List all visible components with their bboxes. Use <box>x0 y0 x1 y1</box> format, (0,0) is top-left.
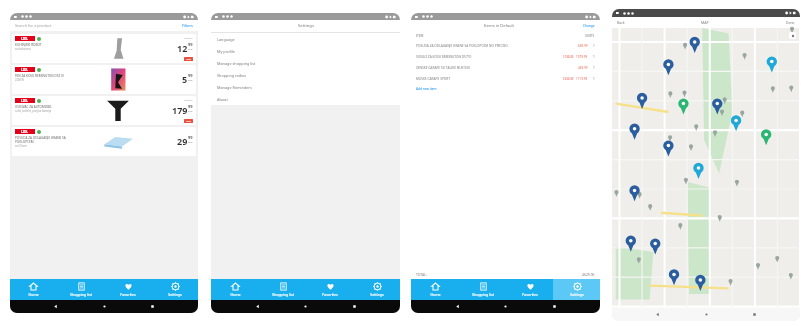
staticText: set 3 kom <box>15 144 27 148</box>
staticText: LIDL <box>21 99 29 103</box>
button[interactable]: Shopping list <box>459 279 506 300</box>
staticText: Shopping radius <box>217 73 247 78</box>
staticText: 99 <box>188 73 193 78</box>
staticText: Home <box>230 292 241 297</box>
button[interactable]: LIDL <box>12 65 196 94</box>
button[interactable]: LIDL <box>12 34 196 63</box>
button[interactable]: Recents <box>552 304 557 309</box>
button[interactable]: Recents <box>352 304 357 309</box>
button[interactable]: Home <box>503 304 508 309</box>
staticText: 179 <box>172 104 188 116</box>
staticText: sa dodacima <box>15 47 31 51</box>
staticText: LIDL <box>21 68 29 72</box>
staticText: RSD <box>188 140 193 143</box>
button[interactable]: Language <box>211 33 400 45</box>
staticText: Settings <box>168 292 182 297</box>
button[interactable]: Map layers <box>789 32 796 39</box>
staticText: Shopping list <box>70 292 92 297</box>
button[interactable]: Back <box>655 312 660 317</box>
staticText: POSUDA ZA ODLAGANJE HRANE SA POKLOPCEM N… <box>416 44 578 48</box>
staticText: ručni, bežični, punjiva baterija <box>15 109 52 113</box>
staticText: ZENSKE CARAPE SU TALIKE NUR 500 <box>416 66 578 70</box>
button[interactable]: Shopping list <box>259 279 306 300</box>
button[interactable]: Search for a product <box>15 20 193 31</box>
staticText: 1 <box>593 66 595 70</box>
button[interactable]: Back <box>617 20 625 25</box>
staticText: 649.99 <box>578 44 588 48</box>
button[interactable]: POSUDA ZA ODLAGANJE HRANE SA POKLOPCEM N… <box>411 40 600 51</box>
button[interactable]: Manage Reminders <box>211 81 400 93</box>
staticText: -20% <box>186 120 192 123</box>
staticText: TOTAL: <box>416 272 427 277</box>
button[interactable]: Home <box>102 304 107 309</box>
button[interactable]: ZENSKE CARAPE SU TALIKE NUR 500 <box>411 62 600 73</box>
button[interactable]: Favorites <box>506 279 553 300</box>
button[interactable]: Shopping radius <box>211 69 400 81</box>
staticText: umesto <box>184 36 193 39</box>
button[interactable]: Manage shopping list <box>211 57 400 69</box>
button[interactable]: My profile <box>211 45 400 57</box>
staticText: FEN ZA KOSU REMINGTON D5210 <box>15 74 64 78</box>
button[interactable]: Home <box>303 304 308 309</box>
button[interactable]: Change <box>583 24 595 28</box>
staticText: Shopping list <box>272 292 294 297</box>
staticText: RSD <box>188 78 193 81</box>
staticText: Favorites <box>322 292 338 297</box>
staticText: Shopping list <box>472 292 494 297</box>
button[interactable]: Back <box>455 304 460 309</box>
staticText: Language <box>217 37 235 42</box>
button[interactable]: Settings <box>353 279 400 300</box>
staticText: 1119.99 <box>576 77 588 81</box>
staticText: MUSKE CARAPE SPORT <box>416 77 563 81</box>
staticText: Settings <box>570 292 584 297</box>
staticText: Back <box>617 20 625 25</box>
staticText: 469.99 <box>578 66 588 70</box>
button[interactable]: LIDL <box>12 96 196 125</box>
staticText: 4629.96 <box>582 272 595 277</box>
staticText: 1 <box>593 44 595 48</box>
button[interactable]: About <box>211 93 400 105</box>
button[interactable]: Settings <box>151 279 198 300</box>
staticText: -20% <box>186 58 192 61</box>
staticText: Search for a product <box>15 23 52 28</box>
button[interactable]: Home <box>704 312 709 317</box>
button[interactable]: Add new item <box>411 84 600 94</box>
button[interactable]: Recents <box>150 304 155 309</box>
staticText: Change <box>583 24 595 28</box>
button[interactable]: Recents <box>752 312 757 317</box>
staticText: Home <box>28 292 39 297</box>
button[interactable]: Settings <box>553 279 600 300</box>
staticText: ITEM <box>416 34 424 38</box>
button[interactable]: Done <box>786 20 795 25</box>
button[interactable]: Home <box>211 279 259 300</box>
staticText: Add new item <box>416 87 437 91</box>
button[interactable]: SUSILO ZA KOSU REMINGTON D5710 <box>411 51 600 62</box>
staticText: 1399.99 <box>563 77 574 81</box>
button[interactable]: Back <box>255 304 260 309</box>
button[interactable]: Home <box>10 279 57 300</box>
staticText: 99 <box>188 135 193 140</box>
button[interactable]: Favorites <box>306 279 353 300</box>
staticText: 1 <box>593 55 595 59</box>
staticText: Favorites <box>120 292 136 297</box>
staticText: 1079.99 <box>576 55 588 59</box>
button[interactable]: Favorites <box>104 279 151 300</box>
staticText: LIDL <box>21 130 29 134</box>
staticText: MAP <box>701 20 709 25</box>
button[interactable]: Home <box>411 279 459 300</box>
staticText: 5 <box>182 73 188 85</box>
staticText: 99 <box>188 42 193 47</box>
staticText: About <box>217 97 228 102</box>
staticText: Home <box>430 292 441 297</box>
staticText: Settings <box>370 292 384 297</box>
staticText: 1 <box>593 77 595 81</box>
staticText: SUSILO ZA KOSU REMINGTON D5710 <box>416 55 563 59</box>
staticText: USISIVAC ZA AUTOMOBIL <box>15 105 52 109</box>
staticText: Manage Reminders <box>217 85 252 90</box>
staticText: UNITS <box>585 34 595 38</box>
button[interactable]: MUSKE CARAPE SPORT <box>411 73 600 84</box>
button[interactable]: Shopping list <box>57 279 104 300</box>
staticText: 2200 W <box>15 78 25 82</box>
button[interactable]: Back <box>53 304 58 309</box>
button[interactable]: LIDL <box>12 127 196 156</box>
